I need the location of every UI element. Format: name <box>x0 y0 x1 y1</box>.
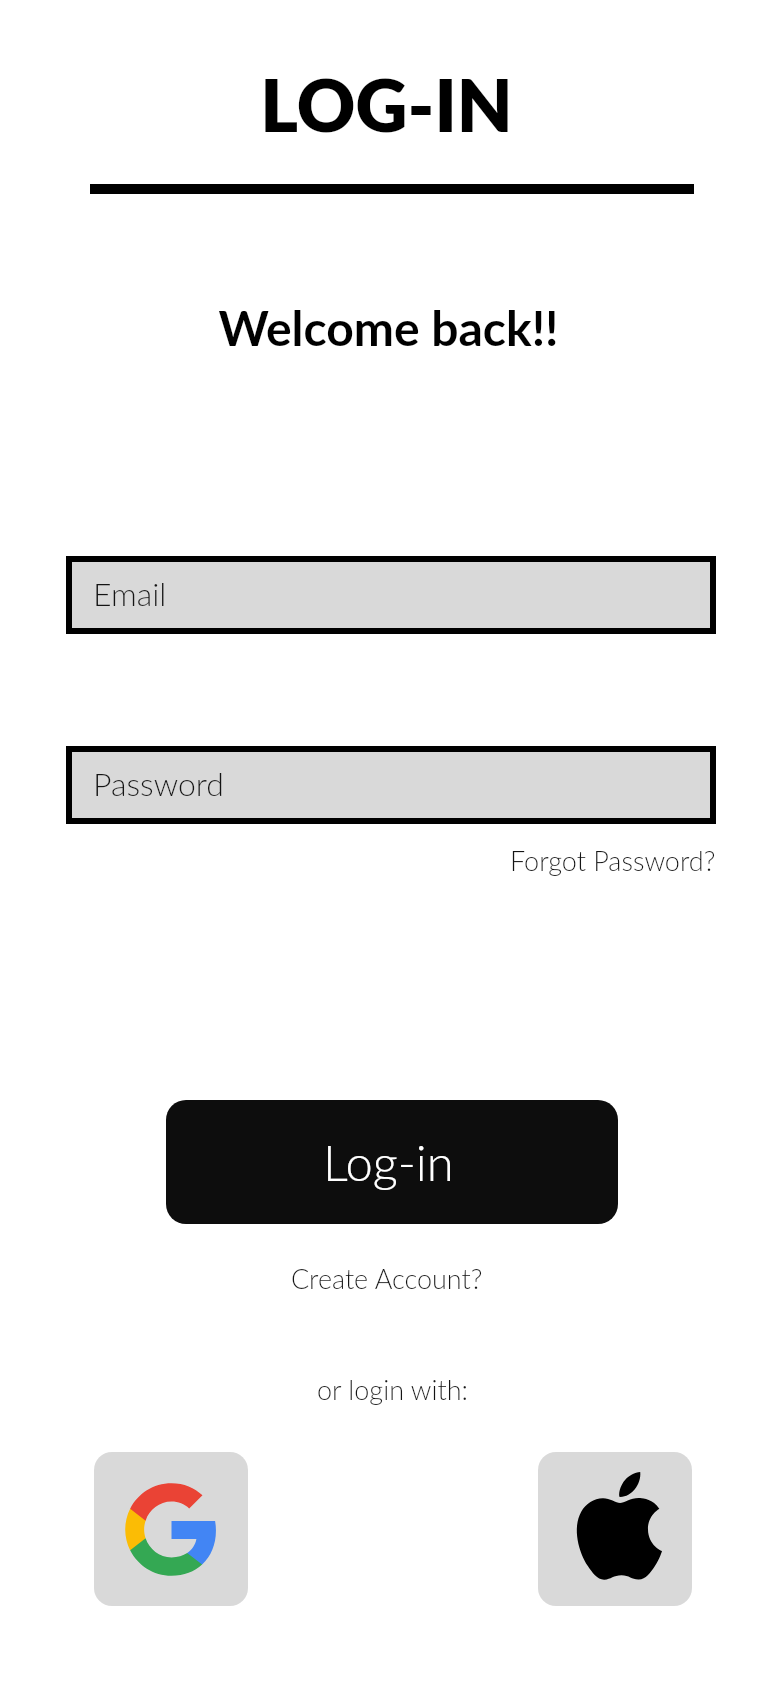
button[interactable]: Sign in with Apple <box>538 1452 692 1606</box>
staticText: LOG-IN <box>260 61 513 147</box>
button[interactable]: Sign in with Google <box>94 1452 248 1606</box>
button[interactable]: Forgot Password? <box>450 838 716 882</box>
staticText: or login with: <box>317 1373 468 1405</box>
button[interactable]: Email <box>72 562 710 628</box>
staticText: Forgot Password? <box>510 844 716 876</box>
staticText: Log-in <box>323 1133 454 1192</box>
staticText: Password <box>93 764 224 802</box>
staticText: Create Account? <box>291 1262 483 1294</box>
staticText: Email <box>93 574 167 612</box>
button[interactable]: Create Account? <box>277 1256 497 1300</box>
staticText: Welcome back!! <box>218 299 559 357</box>
button[interactable]: Password <box>72 752 710 818</box>
button[interactable]: Log-in <box>166 1100 618 1224</box>
